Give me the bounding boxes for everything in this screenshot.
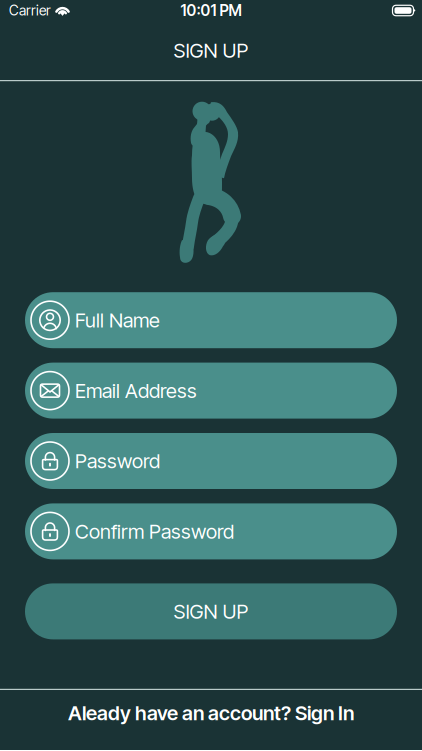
staticText: SIGN UP [173, 38, 248, 63]
button[interactable]: Full Name [25, 292, 397, 348]
staticText: 10:01 PM [180, 1, 241, 20]
button[interactable]: Email Address [25, 363, 397, 419]
staticText: Password [75, 449, 160, 473]
staticText: Aleady have an account? Sign In [68, 701, 354, 725]
staticText: SIGN UP [173, 599, 248, 623]
staticText: Confirm Password [75, 519, 234, 543]
button[interactable]: Password [25, 433, 397, 489]
staticText: Email Address [75, 378, 197, 403]
button[interactable]: SIGN UP [25, 583, 397, 639]
button[interactable]: Aleady have an account? Sign In [0, 690, 422, 750]
button[interactable]: Confirm Password [25, 503, 397, 559]
staticText: Carrier [9, 2, 51, 19]
staticText: Full Name [75, 308, 160, 332]
